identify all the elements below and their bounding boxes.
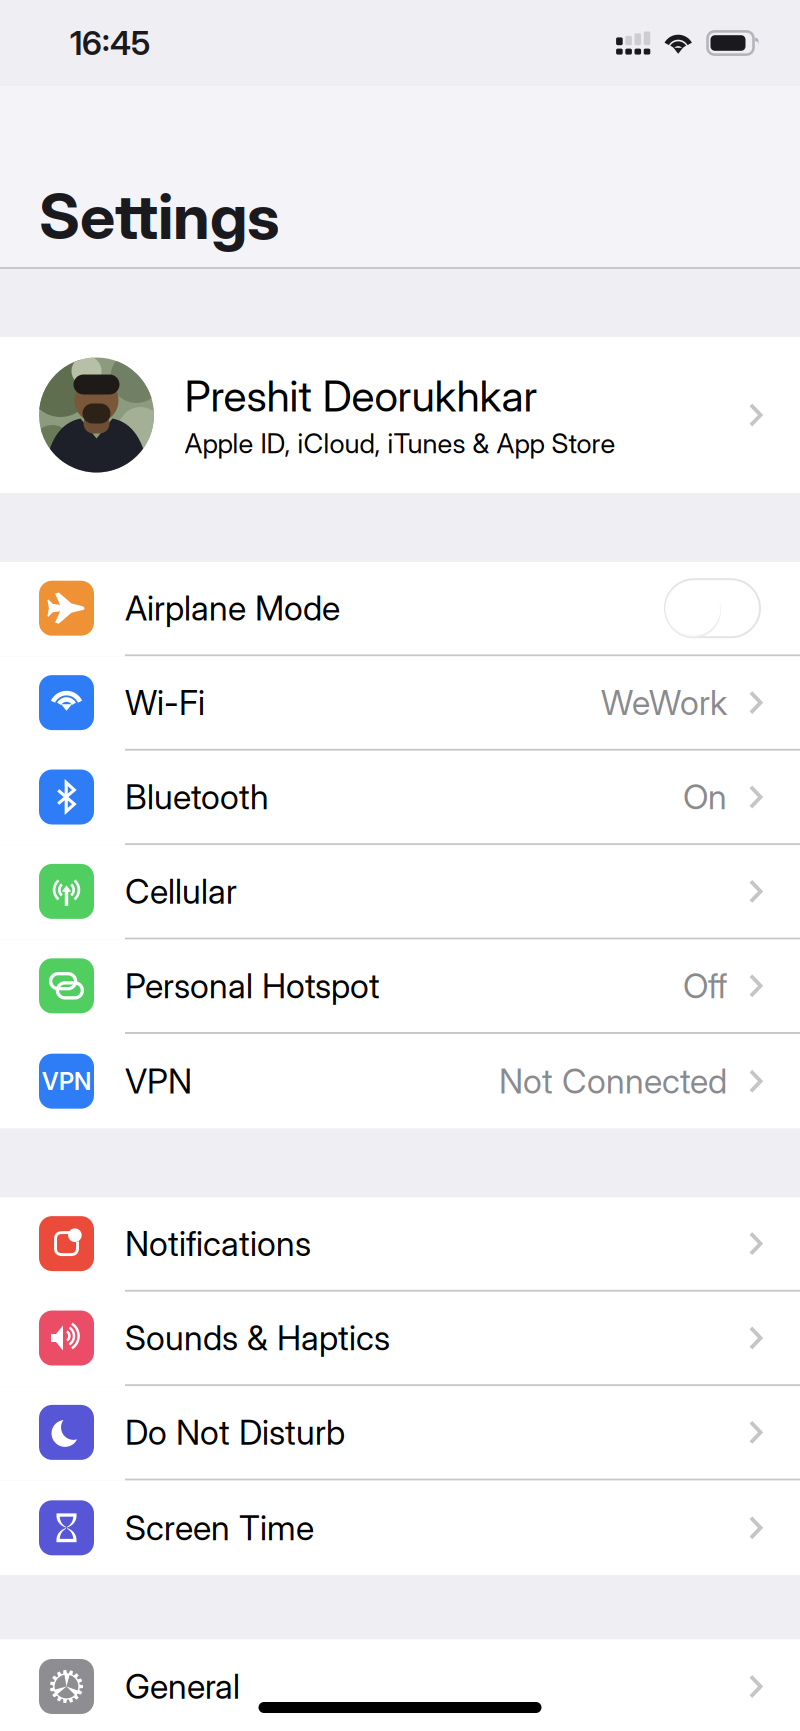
button[interactable]: Bluetooth: [0, 751, 800, 845]
button[interactable]: Preshit Deorukhkar: [0, 337, 800, 493]
staticText: General: [125, 1666, 240, 1707]
button[interactable]: Airplane Mode: [0, 562, 800, 656]
button[interactable]: Cellular: [0, 845, 800, 940]
staticText: Apple ID, iCloud, iTunes & App Store: [184, 427, 615, 460]
button[interactable]: Wi-Fi: [0, 656, 800, 751]
staticText: Personal Hotspot: [125, 965, 380, 1006]
staticText: Screen Time: [125, 1507, 314, 1548]
staticText: Wi-Fi: [125, 682, 205, 723]
button[interactable]: Personal Hotspot: [0, 940, 800, 1034]
staticText: Notifications: [125, 1223, 311, 1264]
staticText: VPN: [125, 1061, 192, 1102]
staticText: Cellular: [125, 871, 237, 912]
button[interactable]: Screen Time: [0, 1481, 800, 1575]
button[interactable]: VPN: [0, 1034, 800, 1128]
staticText: VPN: [42, 1067, 91, 1096]
staticText: Not Connected: [499, 1061, 727, 1102]
staticText: WeWork: [601, 682, 727, 723]
staticText: Sounds & Haptics: [125, 1317, 390, 1358]
button[interactable]: Notifications: [0, 1197, 800, 1292]
staticText: Airplane Mode: [125, 588, 340, 629]
staticText: Do Not Disturb: [125, 1412, 345, 1453]
button[interactable]: Do Not Disturb: [0, 1386, 800, 1481]
staticText: Off: [683, 965, 727, 1006]
staticText: Preshit Deorukhkar: [184, 370, 537, 422]
button[interactable]: General: [0, 1639, 800, 1731]
staticText: On: [683, 776, 727, 817]
staticText: Bluetooth: [125, 776, 269, 817]
staticText: Settings: [39, 178, 280, 254]
staticText: 16:45: [70, 23, 150, 63]
button[interactable]: Sounds & Haptics: [0, 1292, 800, 1386]
